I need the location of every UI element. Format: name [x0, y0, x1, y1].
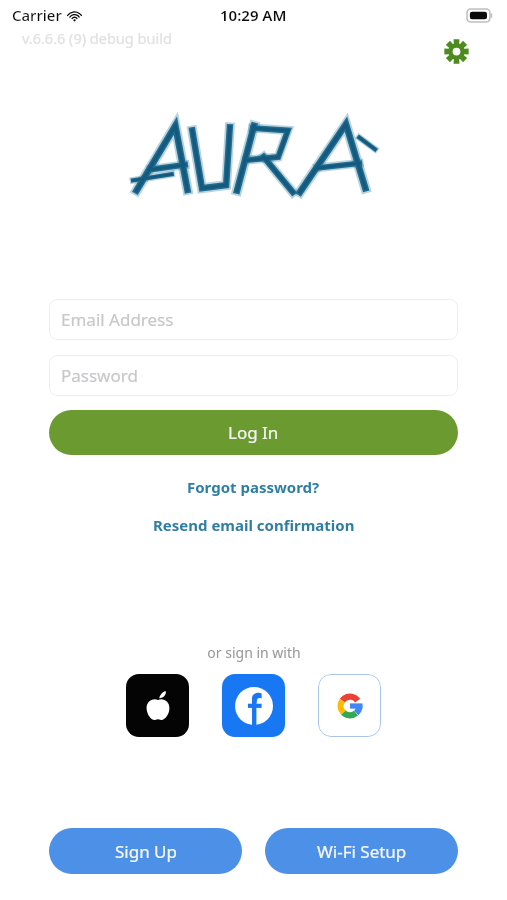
staticText: Sign Up: [115, 840, 177, 863]
staticText: v.6.6.6 (9) debug build: [22, 28, 172, 48]
button[interactable]: Resend email confirmation: [143, 511, 365, 539]
button[interactable]: Forgot password?: [177, 473, 330, 501]
staticText: Resend email confirmation: [153, 515, 355, 535]
staticText: Password: [61, 364, 138, 387]
button[interactable]: Wi-Fi Setup: [265, 828, 458, 874]
button[interactable]: Settings: [434, 29, 478, 73]
staticText: 10:29 AM: [220, 5, 287, 25]
button[interactable]: Email Address: [49, 299, 458, 340]
button[interactable]: Log In: [49, 410, 458, 455]
staticText: Forgot password?: [187, 477, 320, 497]
button[interactable]: Sign in with Google: [318, 674, 381, 737]
staticText: Log In: [228, 421, 279, 444]
staticText: or sign in with: [207, 643, 301, 662]
staticText: Email Address: [61, 308, 174, 331]
button[interactable]: Password: [49, 355, 458, 396]
button[interactable]: Sign in with Facebook: [222, 674, 285, 737]
button[interactable]: Sign Up: [49, 828, 242, 874]
button[interactable]: Sign in with Apple: [126, 674, 189, 737]
staticText: Carrier: [12, 5, 62, 25]
staticText: Wi-Fi Setup: [317, 840, 407, 863]
